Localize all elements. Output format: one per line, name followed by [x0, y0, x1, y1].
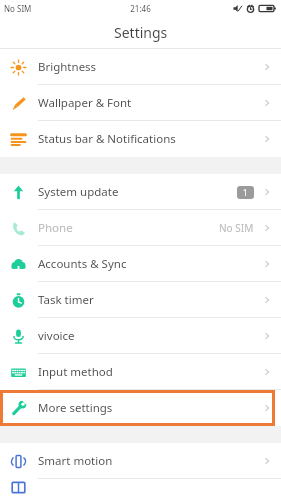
staticText: System update — [38, 184, 237, 200]
staticText: Brightness — [38, 59, 261, 75]
staticText: Status bar & Notifications — [38, 131, 261, 147]
staticText: No SIM — [219, 221, 254, 235]
button[interactable]: Status bar & Notifications — [0, 121, 281, 157]
staticText: vivoice — [38, 328, 261, 344]
staticText: More settings — [38, 400, 261, 416]
button[interactable]: Phone — [0, 210, 281, 246]
staticText: 1 — [243, 187, 248, 198]
button[interactable]: Smart motion — [0, 443, 281, 479]
staticText: Task timer — [38, 292, 261, 308]
button[interactable]: More settings — [0, 390, 281, 426]
staticText: No SIM — [4, 3, 32, 14]
staticText: Input method — [38, 364, 261, 380]
button[interactable]: Wallpaper & Font — [0, 85, 281, 121]
button[interactable]: vivoice — [0, 318, 281, 354]
button[interactable]: Smart split — [0, 479, 281, 495]
staticText: Settings — [114, 23, 168, 42]
staticText: Accounts & Sync — [38, 256, 261, 272]
staticText: 21:46 — [130, 3, 151, 14]
button[interactable]: Brightness — [0, 49, 281, 85]
button[interactable]: Accounts & Sync — [0, 246, 281, 282]
staticText: Smart motion — [38, 453, 261, 469]
button[interactable]: Input method — [0, 354, 281, 390]
staticText: Phone — [38, 220, 219, 236]
button[interactable]: System update — [0, 174, 281, 210]
staticText: Wallpaper & Font — [38, 95, 261, 111]
button[interactable]: Task timer — [0, 282, 281, 318]
